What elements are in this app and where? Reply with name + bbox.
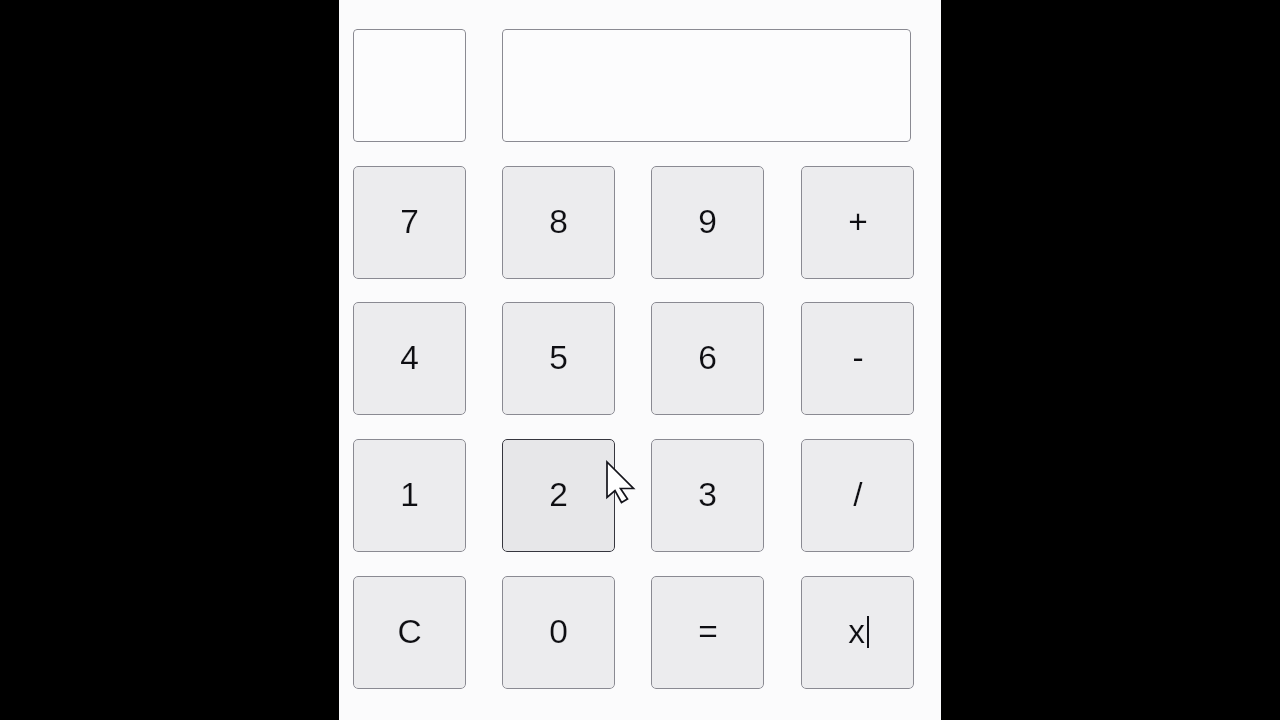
staticText: 6 <box>698 339 717 376</box>
staticText: 4 <box>400 339 419 376</box>
staticText: 8 <box>549 203 568 240</box>
button[interactable]: = <box>651 576 764 689</box>
staticText: - <box>852 339 864 376</box>
button[interactable]: / <box>801 439 914 552</box>
staticText: 3 <box>698 476 717 513</box>
button[interactable]: 7 <box>353 166 466 279</box>
staticText: 9 <box>698 203 717 240</box>
staticText: 7 <box>400 203 419 240</box>
button[interactable]: Memory field <box>353 29 466 142</box>
staticText: + <box>848 203 868 240</box>
staticText: x <box>848 613 865 650</box>
button[interactable]: 3 <box>651 439 764 552</box>
button[interactable]: 1 <box>353 439 466 552</box>
staticText: 2 <box>549 476 568 513</box>
button[interactable]: 0 <box>502 576 615 689</box>
button[interactable]: x <box>801 576 914 689</box>
button[interactable]: 5 <box>502 302 615 415</box>
button[interactable]: 2 <box>502 439 615 552</box>
button[interactable]: - <box>801 302 914 415</box>
staticText: C <box>397 613 422 650</box>
staticText: 5 <box>549 339 568 376</box>
button[interactable]: C <box>353 576 466 689</box>
staticText: 1 <box>400 476 419 513</box>
button[interactable]: 9 <box>651 166 764 279</box>
staticText: / <box>853 476 863 513</box>
staticText: 0 <box>549 613 568 650</box>
button[interactable]: 6 <box>651 302 764 415</box>
button[interactable]: 4 <box>353 302 466 415</box>
button[interactable]: + <box>801 166 914 279</box>
button[interactable]: 8 <box>502 166 615 279</box>
button[interactable]: Display <box>502 29 911 142</box>
staticText: = <box>698 613 718 650</box>
